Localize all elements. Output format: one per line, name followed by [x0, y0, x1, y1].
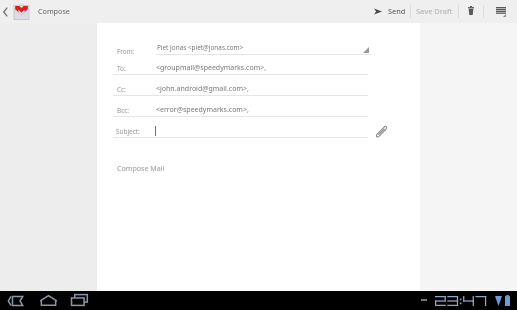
button[interactable]: Home	[33, 291, 63, 310]
button[interactable]: Back	[1, 291, 31, 310]
button[interactable]: Send	[369, 0, 410, 22]
staticText: Compose	[38, 6, 70, 16]
button[interactable]: Navigate up	[0, 0, 32, 23]
staticText: Bcc:	[117, 106, 130, 115]
staticText: Cc:	[117, 85, 126, 94]
button[interactable]: Save Draft	[411, 0, 458, 22]
staticText: From:	[117, 47, 135, 56]
staticText: <john.android@gmail.com>,	[156, 84, 249, 94]
staticText: Save Draft	[416, 6, 453, 16]
staticText: Compose Mail	[117, 163, 165, 173]
staticText: Piet Jonas <piet@jonas.com>	[157, 43, 244, 52]
staticText: To:	[117, 64, 126, 73]
staticText: <error@speedymarks.com>,	[156, 105, 249, 115]
button[interactable]: Delete	[459, 0, 483, 22]
staticText: Subject:	[116, 127, 140, 136]
button[interactable]: Recent apps	[65, 291, 95, 310]
staticText: Send	[388, 6, 406, 16]
staticText: <groupmail@speedymarks.com>,	[156, 63, 267, 73]
button[interactable]: More options	[484, 0, 517, 23]
button[interactable]: Attach file	[373, 124, 387, 138]
